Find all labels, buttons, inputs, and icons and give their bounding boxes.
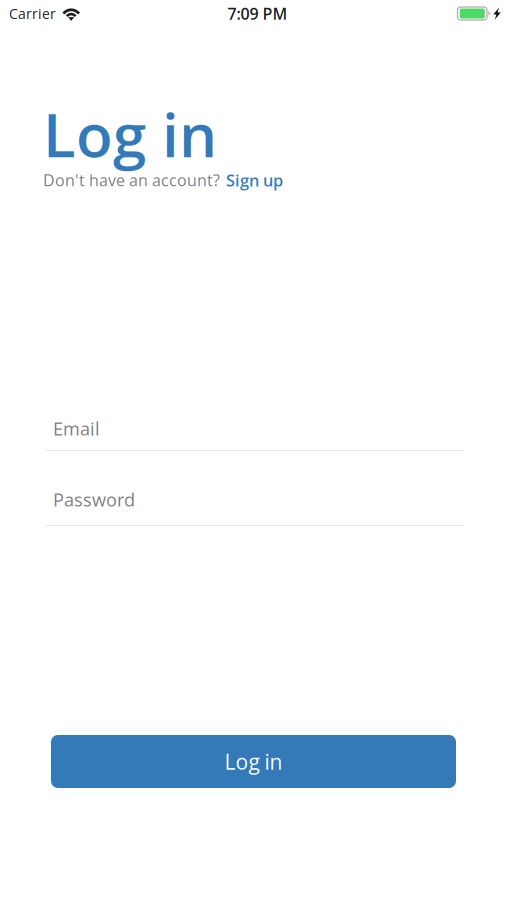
staticText: Password — [53, 487, 135, 512]
staticText: 7:09 PM — [227, 3, 287, 24]
staticText: Sign up — [226, 169, 283, 191]
staticText: Log in — [43, 93, 217, 175]
staticText: Log in — [224, 747, 282, 776]
staticText: Email — [53, 416, 100, 441]
button[interactable]: Log in — [51, 735, 456, 788]
button[interactable]: Don't have an account? — [43, 169, 283, 191]
staticText: Carrier — [9, 4, 56, 23]
staticText: Don't have an account? — [43, 169, 220, 191]
